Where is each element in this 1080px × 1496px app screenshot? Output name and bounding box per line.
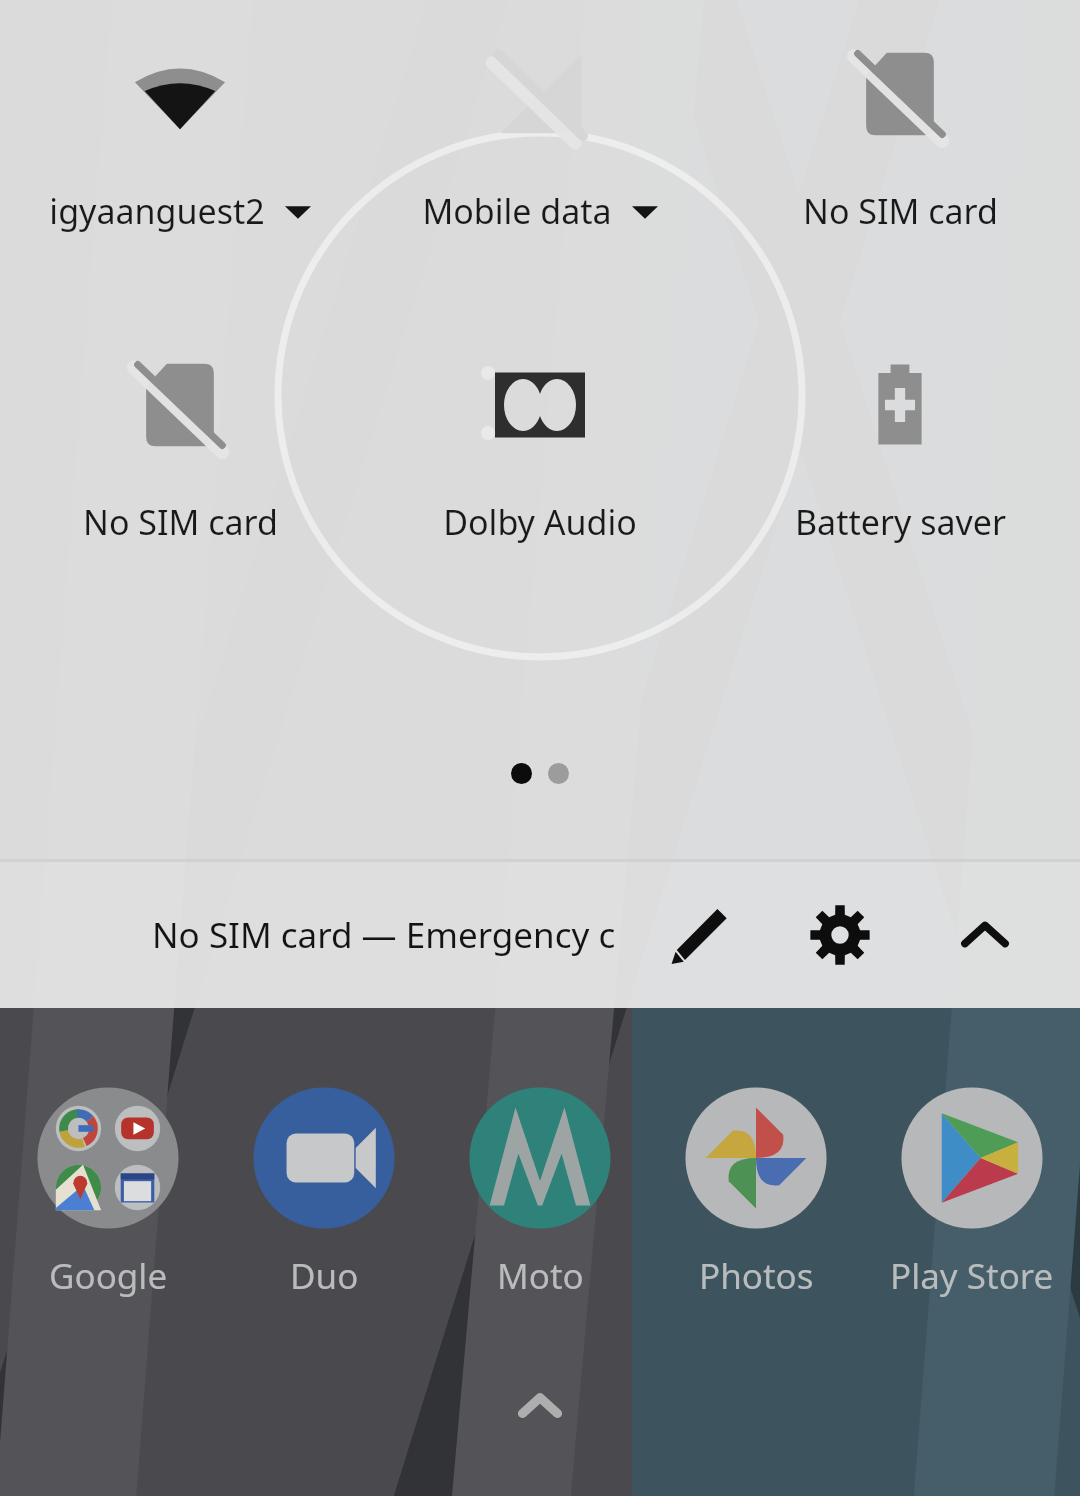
staticText: igyaanguest2 [49,188,265,234]
button[interactable]: Open app drawer [490,1356,590,1456]
button[interactable]: No SIM card [720,0,1080,311]
staticText: No SIM card [803,188,998,234]
staticText: No SIM card [83,499,278,545]
staticText: Google [49,1252,168,1300]
staticText: No SIM card — Emergency c [152,911,616,959]
button[interactable]: Google [0,1086,216,1300]
button[interactable]: Collapse [930,880,1040,990]
button[interactable]: Play Store [864,1086,1080,1300]
button[interactable]: Mobile data [360,0,720,311]
staticText: Battery saver [795,499,1006,545]
button[interactable]: No SIM card [0,311,360,685]
button[interactable]: Duo [216,1086,432,1300]
staticText: Play Store [890,1252,1054,1300]
staticText: Moto [497,1252,584,1300]
button[interactable]: No SIM card — Emergency c [152,880,616,990]
staticText: Mobile data [422,188,612,234]
staticText: Duo [290,1252,359,1300]
button[interactable]: Edit tiles [645,880,755,990]
button[interactable]: Battery saver [720,311,1080,685]
staticText: Photos [699,1252,814,1300]
staticText: Dolby Audio [443,499,637,545]
button[interactable]: Photos [648,1086,864,1300]
button[interactable]: igyaanguest2 [0,0,360,311]
button[interactable]: Moto [432,1086,648,1300]
button[interactable]: Dolby Audio [360,311,720,685]
button[interactable]: Settings [785,880,895,990]
